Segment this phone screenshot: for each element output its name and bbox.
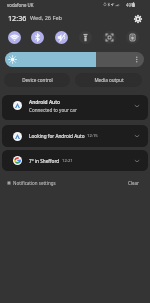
staticText: 12:21	[62, 158, 73, 164]
button[interactable]: Media output	[75, 73, 142, 87]
button[interactable]: Sound off	[55, 31, 68, 44]
staticText: Media output	[94, 77, 124, 83]
button[interactable]: Device controls	[126, 31, 139, 44]
button[interactable]: Settings	[131, 12, 144, 25]
button[interactable]: Looking for Android Auto	[2, 125, 148, 147]
staticText: Connected to your car	[29, 107, 77, 113]
staticText: 12:36	[8, 13, 27, 23]
staticText: Wed, 26 Feb	[30, 14, 62, 22]
button[interactable]: Android Auto	[2, 95, 148, 120]
staticText: Android Auto	[29, 99, 61, 106]
button[interactable]: Bluetooth	[31, 31, 44, 44]
button[interactable]: Device control	[4, 73, 70, 87]
button[interactable]: Auto rotate	[103, 31, 116, 44]
button[interactable]: Expand	[133, 102, 141, 110]
staticText: 7° in Shefford	[29, 158, 60, 164]
button[interactable]: Brightness	[5, 52, 144, 67]
button[interactable]: Notification settings	[7, 180, 56, 186]
staticText: Clear	[128, 180, 139, 186]
button[interactable]: 7° in Shefford	[2, 150, 148, 171]
staticText: Looking for Android Auto	[29, 133, 85, 139]
button[interactable]: Flashlight	[79, 31, 92, 44]
button[interactable]: Internet	[8, 31, 21, 44]
staticText: Notification settings	[13, 180, 56, 186]
button[interactable]: Clear	[128, 180, 139, 186]
staticText: Device control	[22, 77, 53, 83]
staticText: vodafone UK	[7, 2, 34, 8]
staticText: 49%	[126, 2, 135, 8]
button[interactable]: Expand	[133, 157, 141, 165]
button[interactable]: Expand	[133, 132, 141, 140]
staticText: 12:15	[87, 133, 98, 139]
